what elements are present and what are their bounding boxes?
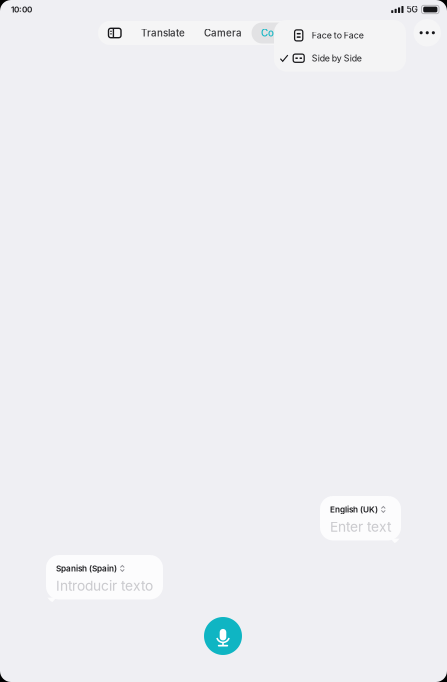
staticText: Side by Side <box>312 53 362 63</box>
staticText: Introducir texto <box>56 577 153 594</box>
button[interactable]: Show sidebar <box>98 21 131 45</box>
button[interactable]: More options <box>413 19 441 46</box>
staticText: Enter text <box>330 518 391 535</box>
staticText: 5G <box>406 4 417 15</box>
staticText: Translate <box>141 27 185 39</box>
staticText: 10:00 <box>11 5 32 14</box>
button[interactable]: Side by Side <box>274 47 406 70</box>
button[interactable]: Start listening <box>204 617 242 655</box>
staticText: Spanish (Spain) <box>56 563 117 573</box>
button[interactable]: Face to Face <box>274 24 406 47</box>
button[interactable]: Camera <box>194 22 251 43</box>
button[interactable]: Translate <box>131 22 194 43</box>
button[interactable]: Conversation <box>251 22 332 43</box>
staticText: Conversation <box>261 27 323 39</box>
staticText: Face to Face <box>312 30 364 41</box>
staticText: Camera <box>204 27 242 39</box>
staticText: English (UK) <box>330 504 378 514</box>
